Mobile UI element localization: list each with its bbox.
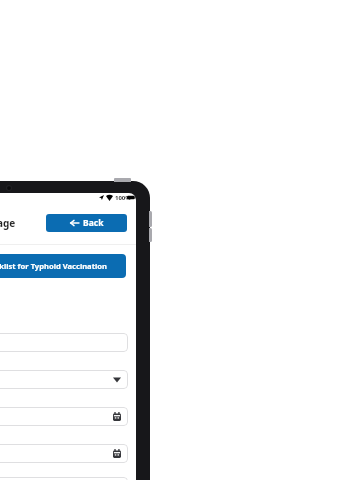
- button[interactable]: Pick date: [0, 444, 128, 463]
- staticText: Checklist for Typhoid Vaccination: [0, 261, 107, 271]
- staticText: Back: [83, 217, 104, 229]
- button[interactable]: Pick date: [0, 407, 128, 426]
- button[interactable]: Back: [46, 214, 127, 232]
- button[interactable]: Open dropdown: [0, 370, 128, 389]
- button[interactable]: [0, 477, 128, 480]
- staticText: Homepage: [0, 216, 16, 230]
- button[interactable]: Checklist for Typhoid Vaccination: [0, 254, 126, 278]
- staticText: 100%: [115, 194, 131, 202]
- other: Pick date: [113, 412, 121, 421]
- other: Pick date: [113, 449, 121, 458]
- button[interactable]: [0, 333, 128, 352]
- other: Open dropdown: [113, 377, 121, 383]
